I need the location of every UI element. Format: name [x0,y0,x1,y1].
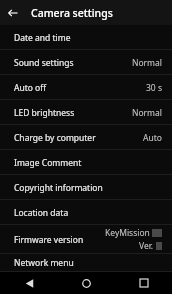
staticText: KeyMission [105,227,150,239]
button[interactable]: Sound settings [0,50,172,75]
button[interactable]: Copyright information [0,175,172,200]
button[interactable]: Home [58,272,115,294]
staticText: Camera settings [31,6,113,20]
staticText: Date and time [14,32,71,44]
staticText: Network menu [14,257,74,269]
staticText: Auto off [14,82,47,94]
staticText: Image Comment [14,157,82,169]
staticText: LED brightness [14,107,75,119]
button[interactable]: Location data [0,200,172,225]
staticText: Ver. [139,240,154,252]
staticText: Normal [131,57,162,69]
staticText: Copyright information [14,182,103,194]
staticText: Charge by computer [14,132,96,144]
staticText: Sound settings [14,57,74,69]
button[interactable]: LED brightness [0,100,172,125]
button[interactable]: Charge by computer [0,125,172,150]
staticText: 30 s [145,82,162,94]
button[interactable]: Back [0,272,58,294]
button[interactable]: Recent apps [115,272,172,294]
staticText: Auto [143,132,162,144]
button[interactable]: Date and time [0,25,172,50]
staticText: Normal [131,107,162,119]
staticText: Firmware version [14,234,84,246]
staticText: Location data [14,207,69,219]
button[interactable]: Auto off [0,75,172,100]
button[interactable]: Back [0,0,25,25]
button[interactable]: Network menu [0,254,172,272]
button[interactable]: Firmware version [0,225,172,254]
button[interactable]: Image Comment [0,150,172,175]
